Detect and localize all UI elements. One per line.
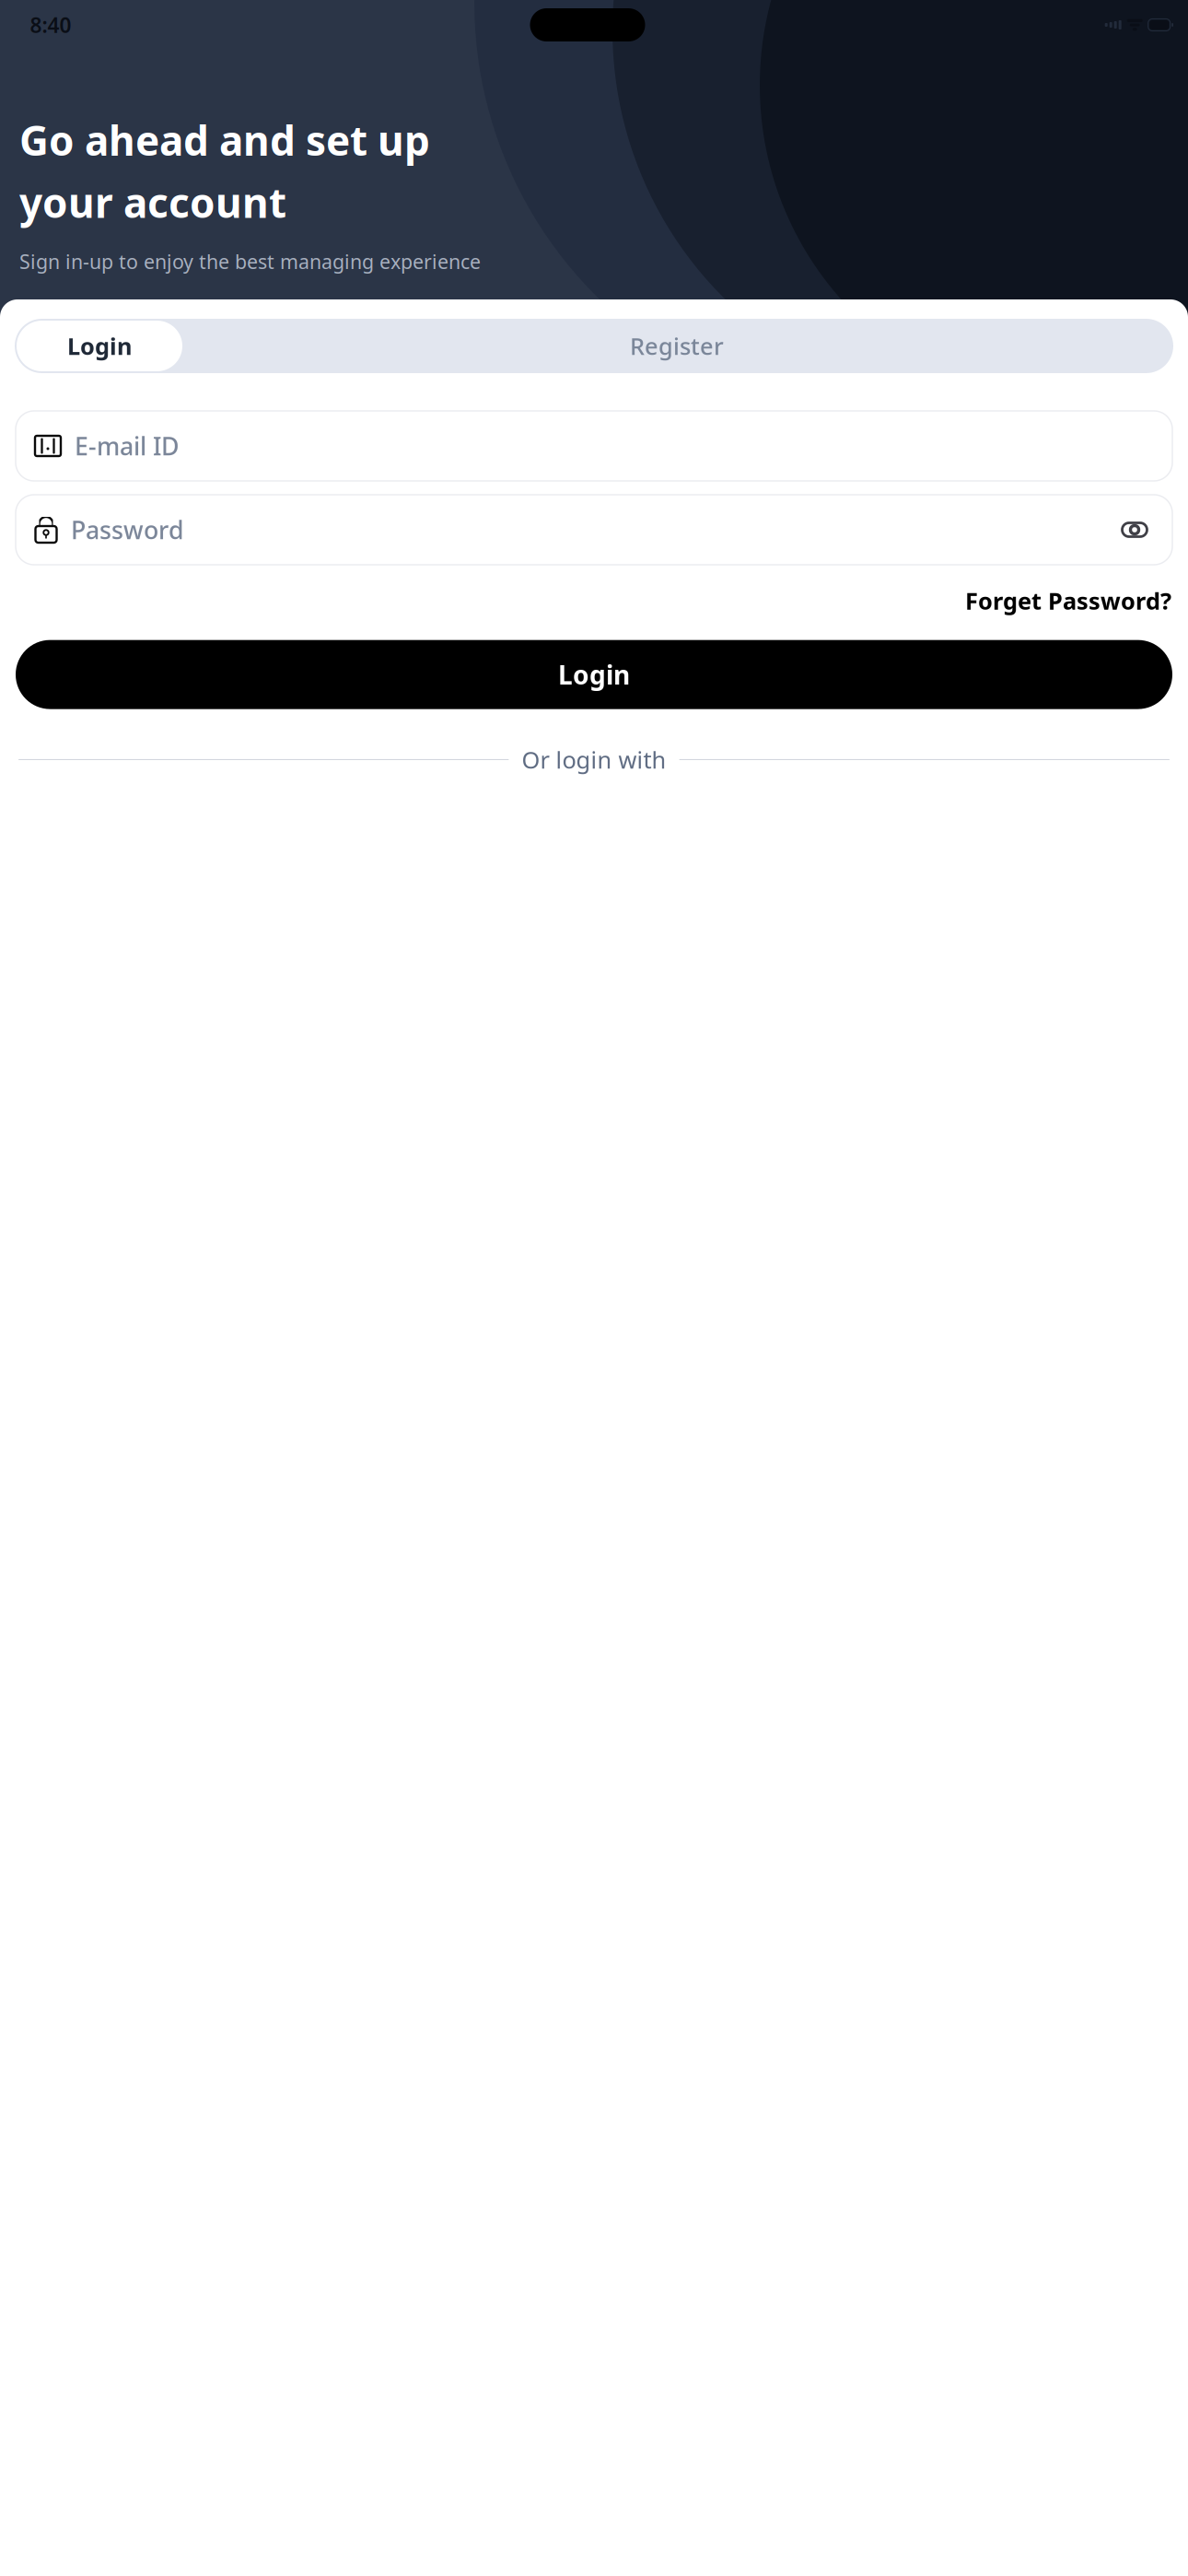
button[interactable]: Show password — [1115, 510, 1154, 549]
staticText: Register — [630, 330, 724, 361]
staticText: E-mail ID — [75, 430, 179, 462]
staticText: Password — [71, 513, 184, 546]
button[interactable]: Login — [17, 321, 182, 371]
staticText: Login — [67, 330, 132, 361]
staticText: Sign in-up to enjoy the best managing ex… — [19, 248, 481, 275]
button[interactable]: Forget Password? — [965, 580, 1171, 621]
staticText: Or login with — [522, 744, 666, 775]
staticText: Go ahead and set up — [19, 113, 430, 167]
button[interactable]: Login — [16, 640, 1172, 709]
button[interactable]: Register — [182, 321, 1171, 371]
staticText: Forget Password? — [965, 585, 1171, 616]
staticText: Login — [558, 657, 630, 692]
staticText: your account — [19, 175, 286, 229]
staticText: 8:40 — [30, 11, 71, 39]
